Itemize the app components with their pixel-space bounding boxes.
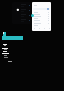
button[interactable] [32, 20, 51, 22]
button[interactable] [32, 14, 51, 16]
button[interactable]: Add [31, 14, 34, 17]
button[interactable] [32, 23, 51, 25]
button[interactable] [32, 18, 51, 20]
button[interactable] [33, 8, 50, 10]
button[interactable] [32, 12, 51, 14]
button[interactable] [32, 16, 51, 18]
